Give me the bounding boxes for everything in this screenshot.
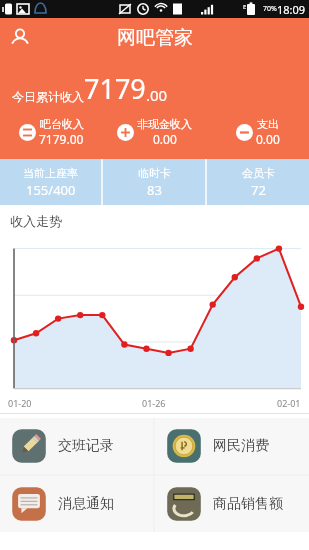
staticText: 0.00 xyxy=(153,131,177,147)
staticText: 临时卡 xyxy=(138,166,171,180)
staticText: 交班记录 xyxy=(58,437,114,455)
staticText: 收入走势 xyxy=(10,213,62,229)
staticText: 7179 xyxy=(84,70,146,107)
staticText: 网吧管家 xyxy=(117,26,193,50)
button[interactable]: 商品销售额 xyxy=(155,476,309,532)
staticText: 今日累计收入 xyxy=(12,89,84,104)
button[interactable]: 消息通知 xyxy=(0,476,153,532)
button[interactable]: 非现金收入 xyxy=(103,117,206,147)
staticText: 消息通知 xyxy=(58,495,114,513)
staticText: 网民消费 xyxy=(213,437,269,455)
button[interactable]: 当前上座率 xyxy=(0,159,101,205)
staticText: 0.00 xyxy=(256,131,280,147)
staticText: .00 xyxy=(146,85,168,105)
staticText: 01-20 xyxy=(8,397,32,409)
button[interactable]: 临时卡 xyxy=(103,159,205,205)
button[interactable]: 会员卡 xyxy=(207,159,309,205)
button[interactable]: Account xyxy=(0,18,40,58)
staticText: 83 xyxy=(147,181,162,199)
staticText: 02-01 xyxy=(277,397,301,409)
staticText: 155/400 xyxy=(26,181,76,199)
staticText: 非现金收入 xyxy=(137,117,192,131)
staticText: 7179.00 xyxy=(39,131,84,147)
staticText: 当前上座率 xyxy=(23,166,78,180)
staticText: 72 xyxy=(251,181,266,199)
button[interactable]: 网民消费 xyxy=(155,418,309,474)
staticText: 18:09 xyxy=(277,2,306,17)
button[interactable]: 吧台收入 xyxy=(0,117,103,147)
staticText: 支出 xyxy=(257,117,279,131)
staticText: 01-26 xyxy=(142,397,166,409)
staticText: 会员卡 xyxy=(242,166,275,180)
staticText: 商品销售额 xyxy=(213,495,283,513)
button[interactable]: 支出 xyxy=(206,117,309,147)
button[interactable]: 交班记录 xyxy=(0,418,153,474)
staticText: 70% xyxy=(263,4,277,14)
staticText: 吧台收入 xyxy=(40,117,84,131)
staticText: E xyxy=(243,3,247,11)
